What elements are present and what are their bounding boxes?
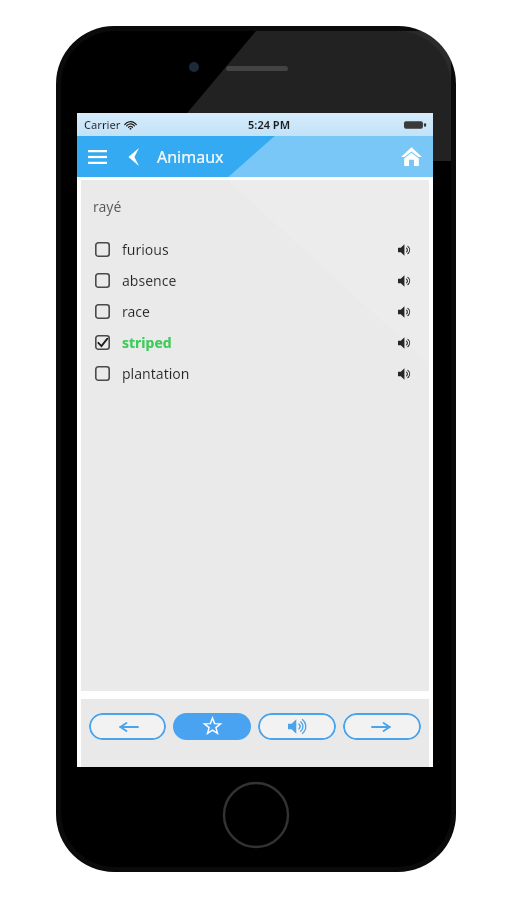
button[interactable]: Previous	[89, 713, 166, 740]
staticText: race	[122, 302, 150, 321]
staticText: Animaux	[157, 146, 224, 168]
button[interactable]: Menu	[77, 136, 117, 177]
staticText: 5:24 PM	[248, 117, 291, 132]
button[interactable]: Speak	[258, 713, 336, 740]
staticText: plantation	[122, 364, 190, 383]
button[interactable]: Play audio for striped	[393, 331, 417, 355]
button[interactable]: Play audio for race	[393, 300, 417, 324]
staticText: absence	[122, 271, 177, 290]
staticText: striped	[122, 333, 172, 352]
staticText: Carrier	[84, 117, 121, 132]
button[interactable]: race	[81, 296, 429, 327]
button[interactable]: Play audio for furious	[393, 238, 417, 262]
button[interactable]: Back	[117, 136, 149, 177]
button[interactable]: furious	[81, 234, 429, 265]
button[interactable]: Play audio for plantation	[393, 362, 417, 386]
button[interactable]: plantation	[81, 358, 429, 389]
button[interactable]: Favorite	[173, 713, 251, 740]
button[interactable]: striped	[81, 327, 429, 358]
button[interactable]: absence	[81, 265, 429, 296]
button[interactable]: Home	[389, 136, 433, 177]
staticText: rayé	[93, 197, 122, 216]
button[interactable]: Play audio for absence	[393, 269, 417, 293]
staticText: furious	[122, 240, 169, 259]
button[interactable]: Next	[343, 713, 421, 740]
